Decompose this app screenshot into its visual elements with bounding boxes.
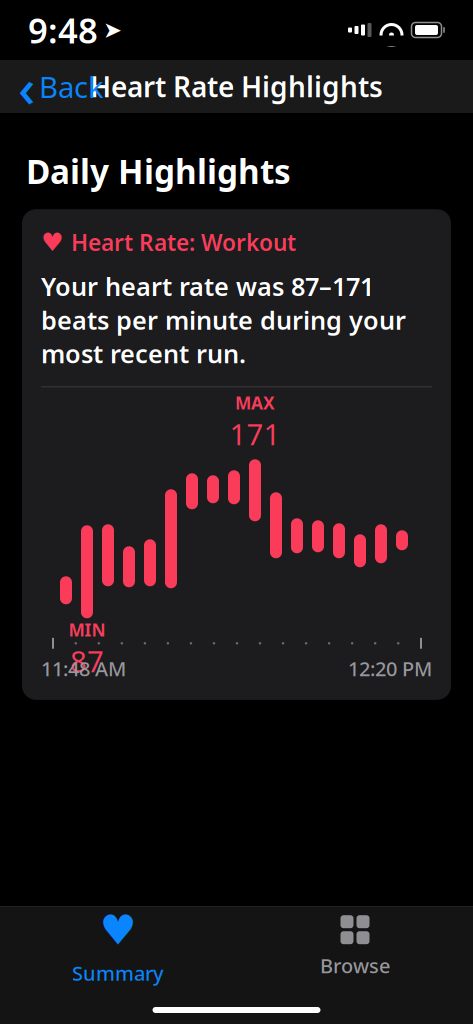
- staticText: Heart Rate Highlights: [90, 68, 383, 105]
- staticText: MIN: [68, 618, 105, 641]
- staticText: 12:20 PM: [348, 655, 432, 682]
- staticText: 9:48: [28, 7, 98, 53]
- staticText: Browse: [320, 952, 390, 979]
- button[interactable]: ♥: [22, 209, 451, 700]
- staticText: MAX: [235, 391, 275, 414]
- staticText: ‹: [18, 51, 35, 122]
- staticText: Your heart rate was 87–171 beats per min…: [41, 269, 406, 370]
- staticText: Back: [39, 67, 104, 106]
- staticText: Heart Rate: Workout: [71, 227, 296, 257]
- staticText: 87: [70, 641, 104, 680]
- staticText: Summary: [72, 960, 164, 986]
- button[interactable]: ‹: [6, 60, 116, 112]
- staticText: 171: [229, 414, 280, 453]
- staticText: ♥: [41, 228, 64, 257]
- staticText: Daily Highlights: [26, 149, 291, 193]
- staticText: ➤: [103, 17, 122, 43]
- staticText: ♥: [99, 907, 136, 954]
- button[interactable]: Browse: [275, 914, 435, 978]
- button[interactable]: ♥: [38, 914, 198, 978]
- staticText: 11:48 AM: [41, 655, 126, 682]
